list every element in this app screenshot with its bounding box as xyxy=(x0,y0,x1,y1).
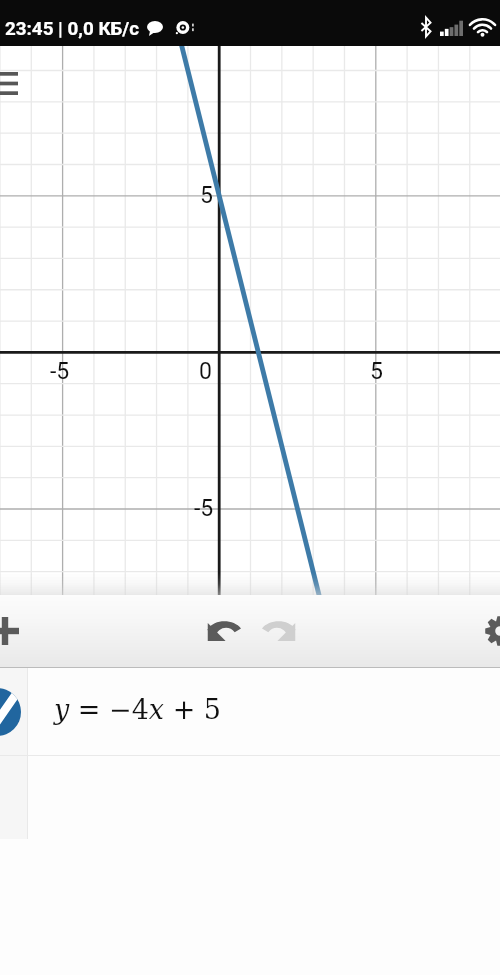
staticText: y = −4x + 5 xyxy=(54,694,222,725)
staticText: 5 xyxy=(370,358,383,385)
staticText: 5 xyxy=(200,182,213,209)
staticText: 0 xyxy=(199,358,212,385)
staticText: -5 xyxy=(194,495,214,522)
staticText: -5 xyxy=(50,358,70,385)
staticText: 23:45 | 0,0 КБ/с xyxy=(5,18,140,40)
button[interactable]: Add expression xyxy=(0,607,29,655)
button[interactable]: Menu xyxy=(0,67,18,100)
button[interactable]: Redo xyxy=(253,604,305,656)
button[interactable]: Settings xyxy=(476,607,500,655)
button[interactable]: Undo xyxy=(197,604,249,656)
button[interactable]: Toggle graph visibility xyxy=(0,688,21,736)
